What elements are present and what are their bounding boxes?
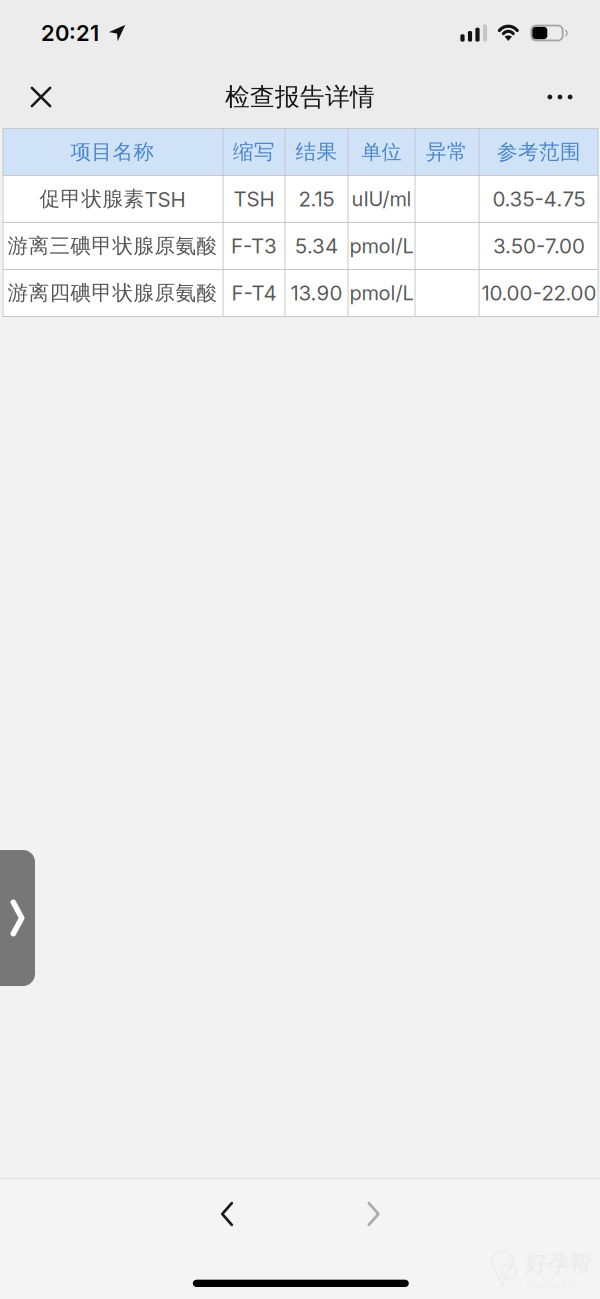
staticText: 缩写	[233, 139, 275, 165]
staticText: 2.15	[298, 187, 334, 211]
staticText: 5.34	[295, 234, 338, 258]
staticText: 异常	[426, 139, 468, 165]
staticText: F-T3	[231, 234, 277, 258]
staticText: 参考范围	[497, 139, 581, 165]
button[interactable]: 更多	[529, 68, 591, 126]
staticText: TSH	[233, 187, 274, 211]
staticText: 游离四碘甲状腺原氨酸	[7, 280, 217, 306]
staticText: 单位	[361, 139, 401, 165]
staticText: 检查报告详情	[225, 81, 375, 113]
staticText: 促甲状腺素TSH	[39, 186, 185, 212]
staticText: 3.50-7.00	[493, 234, 585, 258]
button[interactable]: 关闭	[10, 68, 72, 126]
staticText: 13.90	[290, 281, 342, 305]
button[interactable]: 前进	[340, 1184, 408, 1244]
staticText: 好孕帮	[525, 1250, 591, 1278]
button[interactable]: 后退	[193, 1184, 261, 1244]
button[interactable]: 展开侧栏	[0, 850, 35, 986]
staticText: 项目名称	[70, 139, 154, 165]
staticText: pmol/L	[349, 281, 413, 305]
staticText: F-T4	[231, 281, 276, 305]
staticText: 10.00-22.00	[481, 281, 596, 305]
staticText: uIU/ml	[351, 187, 411, 211]
staticText: pmol/L	[349, 234, 413, 258]
staticText: 0.35-4.75	[492, 187, 585, 211]
staticText: 游离三碘甲状腺原氨酸	[7, 233, 217, 259]
staticText: 20:21	[41, 20, 99, 46]
staticText: 结果	[295, 139, 337, 165]
